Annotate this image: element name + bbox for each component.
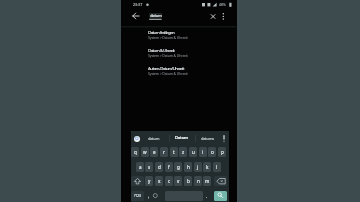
staticText: p: [221, 149, 224, 155]
staticText: z: [182, 149, 185, 155]
button[interactable]: c: [165, 176, 173, 186]
button[interactable]: [134, 136, 140, 142]
staticText: Datum: [175, 135, 188, 141]
button[interactable]: t: [170, 147, 178, 157]
staticText: ?123: [134, 194, 141, 198]
staticText: b: [187, 178, 190, 184]
staticText: d: [158, 164, 161, 170]
button[interactable]: g: [174, 162, 182, 172]
button[interactable]: a: [136, 162, 144, 172]
staticText: j: [197, 164, 199, 170]
staticText: o: [211, 149, 214, 155]
staticText: m: [205, 178, 210, 184]
button[interactable]: w: [141, 147, 149, 157]
button[interactable]: [170, 133, 194, 145]
staticText: .: [206, 193, 208, 199]
staticText: System > Datum & Uhrzeit: [148, 71, 188, 76]
staticText: l: [216, 164, 218, 170]
button[interactable]: z: [179, 147, 187, 157]
button[interactable]: d: [155, 162, 163, 172]
button[interactable]: [121, 46, 237, 63]
button[interactable]: n: [194, 176, 202, 186]
button[interactable]: [131, 191, 144, 201]
button[interactable]: m: [203, 176, 211, 186]
button[interactable]: x: [155, 176, 163, 186]
staticText: c: [168, 178, 171, 184]
staticText: datum: [150, 13, 162, 19]
staticText: h: [187, 164, 190, 170]
staticText: ,: [148, 193, 150, 199]
staticText: f: [168, 164, 170, 170]
button[interactable]: [155, 191, 163, 201]
staticText: i: [202, 149, 204, 155]
staticText: 23:37: [133, 2, 143, 7]
staticText: 48%: [219, 2, 226, 7]
staticText: y: [148, 178, 151, 184]
button[interactable]: e: [150, 147, 158, 157]
button[interactable]: ,: [145, 191, 153, 201]
button[interactable]: [214, 176, 227, 186]
staticText: v: [177, 178, 180, 184]
button[interactable]: j: [194, 162, 202, 172]
button[interactable]: o: [208, 147, 216, 157]
staticText: q: [134, 149, 137, 155]
staticText: u: [192, 149, 195, 155]
button[interactable]: [121, 28, 237, 45]
staticText: r: [163, 149, 165, 155]
button[interactable]: [131, 176, 144, 186]
button[interactable]: [214, 191, 227, 201]
button[interactable]: h: [184, 162, 192, 172]
button[interactable]: r: [160, 147, 168, 157]
staticText: w: [143, 149, 147, 155]
staticText: k: [206, 164, 209, 170]
staticText: datums: [201, 136, 215, 141]
staticText: t: [173, 149, 175, 155]
button[interactable]: k: [203, 162, 211, 172]
button[interactable]: f: [165, 162, 173, 172]
button[interactable]: [197, 133, 221, 145]
button[interactable]: b: [184, 176, 192, 186]
staticText: datum: [148, 136, 160, 141]
button[interactable]: v: [174, 176, 182, 186]
button[interactable]: l: [213, 162, 221, 172]
button[interactable]: [121, 9, 237, 26]
staticText: n: [197, 178, 200, 184]
staticText: System > Datum & Uhrzeit: [148, 35, 188, 40]
button[interactable]: u: [189, 147, 197, 157]
button[interactable]: q: [131, 147, 139, 157]
button[interactable]: [121, 64, 237, 81]
button[interactable]: s: [145, 162, 153, 172]
staticText: e: [153, 149, 156, 155]
button[interactable]: .: [203, 191, 211, 201]
staticText: Autom. Datum/Uhrzeit: [148, 65, 184, 71]
button[interactable]: i: [199, 147, 207, 157]
staticText: x: [158, 178, 161, 184]
staticText: a: [139, 164, 142, 170]
staticText: Datum festlegen: [148, 29, 175, 35]
staticText: s: [148, 164, 151, 170]
staticText: Datum & Uhrzeit: [148, 47, 175, 53]
button[interactable]: y: [145, 176, 153, 186]
button[interactable]: p: [218, 147, 226, 157]
staticText: g: [177, 164, 180, 170]
button[interactable]: [145, 133, 169, 145]
staticText: System > Datum & Uhrzeit: [148, 53, 188, 58]
